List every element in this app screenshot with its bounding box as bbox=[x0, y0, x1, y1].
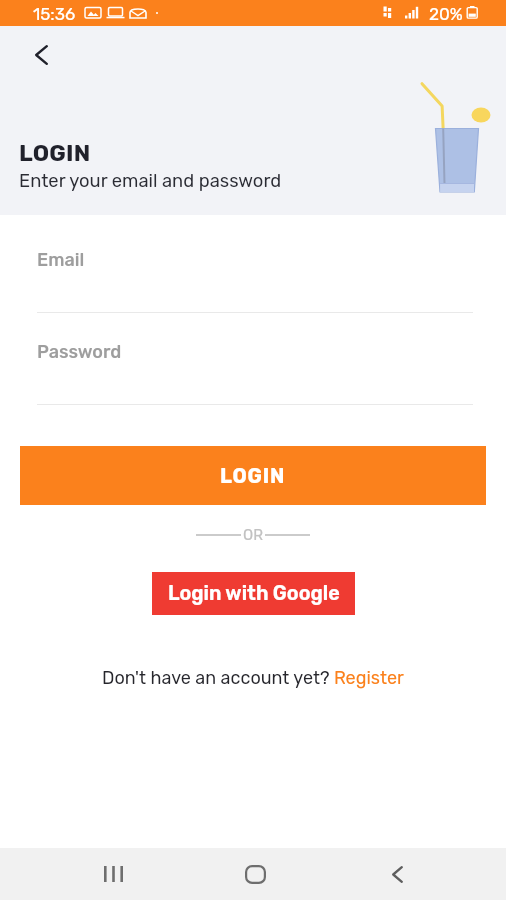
button[interactable]: Login with Google bbox=[152, 572, 355, 615]
staticText: 15:36 bbox=[33, 4, 76, 24]
staticText: OR bbox=[243, 526, 263, 544]
staticText: Don't have an account yet? Register bbox=[102, 667, 404, 688]
button[interactable]: Email bbox=[37, 249, 473, 313]
staticText: LOGIN bbox=[19, 139, 91, 166]
button[interactable]: Back bbox=[371, 850, 423, 898]
staticText: LOGIN bbox=[220, 464, 286, 488]
staticText: Email bbox=[37, 249, 85, 270]
button[interactable]: Recent apps bbox=[86, 850, 140, 898]
button[interactable]: Don't have an account yet? Register bbox=[0, 667, 506, 688]
staticText: Password bbox=[37, 341, 122, 362]
staticText: 20% bbox=[429, 4, 463, 24]
button[interactable]: LOGIN bbox=[20, 446, 486, 505]
button[interactable]: Password bbox=[37, 341, 473, 405]
staticText: Enter your email and password bbox=[19, 170, 282, 192]
button[interactable]: Home bbox=[229, 850, 281, 898]
staticText: Login with Google bbox=[168, 582, 340, 605]
button[interactable]: Back bbox=[14, 26, 68, 84]
